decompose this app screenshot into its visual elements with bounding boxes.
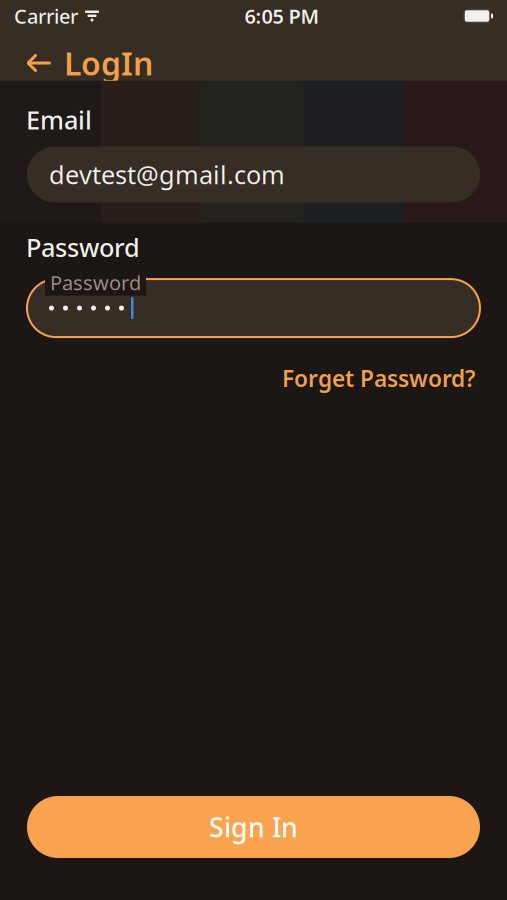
button[interactable]: Password: [27, 267, 480, 339]
staticText: Password: [50, 269, 141, 296]
staticText: Email: [26, 103, 92, 136]
staticText: Forget Password?: [282, 363, 475, 393]
staticText: devtest@gmail.com: [49, 158, 285, 191]
button[interactable]: Sign In: [27, 796, 480, 858]
button[interactable]: Forget Password?: [282, 359, 475, 397]
staticText: Password: [26, 230, 140, 264]
staticText: Carrier: [14, 3, 78, 29]
button[interactable]: devtest@gmail.com: [27, 146, 480, 202]
staticText: Sign In: [209, 809, 298, 845]
button[interactable]: Back: [10, 35, 64, 91]
staticText: 6:05 PM: [244, 3, 319, 29]
staticText: LogIn: [64, 42, 153, 84]
